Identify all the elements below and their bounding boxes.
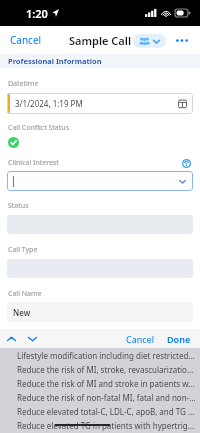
staticText: 1:20 (26, 6, 48, 21)
button[interactable]: 3/1/2024, 1:19 PM (7, 93, 193, 114)
button[interactable] (7, 171, 193, 191)
staticText: Cancel (10, 33, 42, 47)
button[interactable]: Previous field (0, 332, 23, 346)
button[interactable]: Help (182, 159, 191, 168)
staticText: Cancel (126, 333, 155, 345)
staticText: Call Type (8, 245, 38, 255)
button[interactable]: Reduce the risk of MI and stroke in pati… (0, 376, 200, 390)
staticText: Professional Information (8, 56, 102, 66)
staticText: Reduce the risk of non-fatal MI, fatal a… (17, 392, 196, 403)
staticText: Datetime (8, 79, 39, 89)
staticText: Reduce the risk of MI, stroke, revascula… (17, 364, 196, 375)
button[interactable]: Reduce the risk of MI, stroke, revascula… (0, 362, 200, 376)
button[interactable]: Done (161, 330, 200, 348)
button[interactable]: Reduce the risk of non-fatal MI, fatal a… (0, 390, 200, 404)
button[interactable]: Reduce elevated total-C, LDL-C, apoB, an… (0, 404, 200, 418)
staticText: Sample Call (69, 33, 132, 48)
button[interactable]: Next field (23, 332, 42, 346)
staticText: Call Conflict Status (8, 123, 69, 133)
button[interactable]: New (7, 302, 193, 322)
button[interactable]: Reduce elevated TG in patients with hype… (0, 418, 200, 432)
staticText: Call Name (8, 289, 42, 299)
staticText: 3/1/2024, 1:19 PM (15, 98, 178, 109)
staticText: Lifestyle modification including diet re… (17, 350, 196, 361)
staticText: Status (8, 201, 29, 211)
staticText: Reduce elevated TG in patients with hype… (17, 420, 196, 431)
staticText: Reduce the risk of MI and stroke in pati… (17, 378, 196, 389)
staticText: New (13, 307, 31, 318)
staticText: Clinical Interest (8, 158, 59, 168)
button[interactable]: More options (170, 33, 194, 48)
button[interactable]: Cancel (0, 28, 52, 52)
button[interactable]: Lifestyle modification including diet re… (0, 348, 200, 362)
staticText: Done (167, 333, 191, 345)
button[interactable]: Attendees (133, 34, 166, 48)
button[interactable]: Cancel (120, 330, 161, 348)
staticText: Reduce elevated total-C, LDL-C, apoB, an… (17, 406, 196, 417)
